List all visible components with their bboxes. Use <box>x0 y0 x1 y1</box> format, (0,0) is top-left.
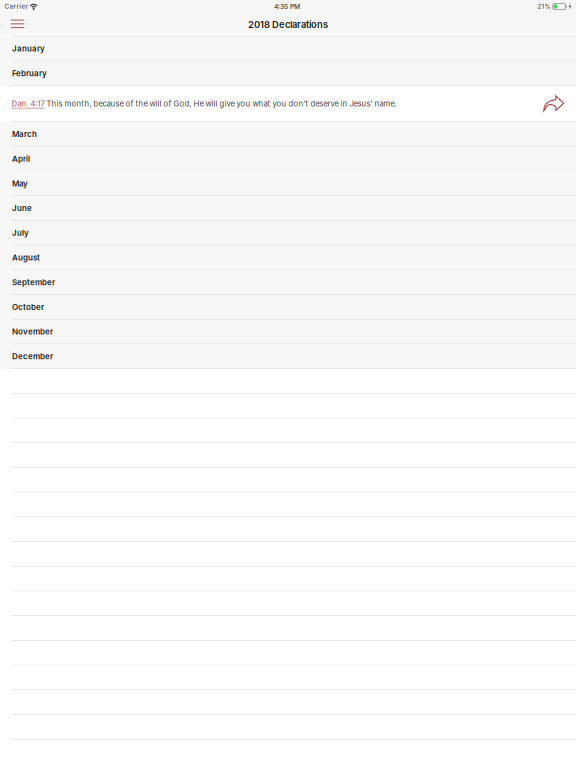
staticText: August <box>12 253 40 262</box>
staticText: May <box>12 179 28 188</box>
button[interactable]: January <box>0 37 576 61</box>
staticText: 21% <box>537 3 550 10</box>
staticText: February <box>12 69 47 78</box>
staticText: March <box>12 129 37 139</box>
staticText: 4:35 PM <box>274 2 300 11</box>
button[interactable]: Menu <box>5 13 29 36</box>
staticText: December <box>12 352 53 361</box>
staticText: June <box>12 203 32 213</box>
staticText: October <box>12 302 44 312</box>
staticText: This month, because of the will of God, … <box>44 99 396 108</box>
button[interactable]: September <box>0 270 576 295</box>
staticText: Carrier <box>5 3 28 10</box>
staticText: 2018 Declarations <box>248 19 328 30</box>
staticText: Dan. 4:17 <box>11 99 44 108</box>
staticText: November <box>12 327 53 337</box>
button[interactable]: July <box>0 221 576 246</box>
button[interactable]: March <box>0 122 576 147</box>
button[interactable]: June <box>0 196 576 221</box>
button[interactable]: October <box>0 295 576 320</box>
button[interactable]: April <box>0 147 576 171</box>
button[interactable]: December <box>0 344 576 369</box>
button[interactable]: Share <box>539 93 568 115</box>
staticText: July <box>12 228 29 238</box>
staticText: April <box>12 154 30 164</box>
button[interactable]: May <box>0 171 576 196</box>
button[interactable]: February <box>0 61 576 86</box>
staticText: September <box>12 277 55 287</box>
button[interactable]: August <box>0 246 576 270</box>
staticText: January <box>12 44 45 54</box>
button[interactable]: November <box>0 320 576 344</box>
